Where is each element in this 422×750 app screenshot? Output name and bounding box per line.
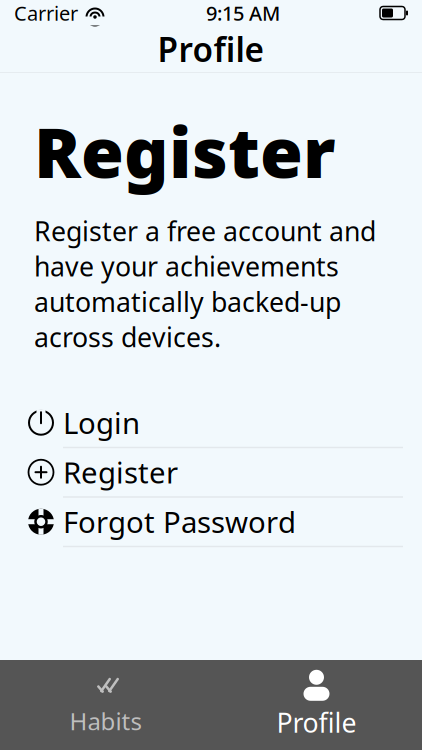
staticText: Register xyxy=(34,105,336,197)
staticText: Carrier xyxy=(14,0,78,26)
staticText: Forgot Password xyxy=(63,502,296,541)
button[interactable]: Forgot Password xyxy=(0,498,422,547)
staticText: Profile xyxy=(157,27,264,71)
button[interactable]: Login xyxy=(0,399,422,448)
button[interactable]: Register xyxy=(0,448,422,498)
staticText: Login xyxy=(63,403,140,442)
button[interactable]: Profile xyxy=(211,660,422,750)
staticText: Register xyxy=(63,453,178,492)
staticText: Register a free account and have your ac… xyxy=(34,213,376,355)
staticText: Profile xyxy=(276,705,356,740)
button[interactable]: Habits xyxy=(0,660,211,750)
staticText: 9:15 AM xyxy=(206,0,280,26)
staticText: Habits xyxy=(69,705,141,737)
